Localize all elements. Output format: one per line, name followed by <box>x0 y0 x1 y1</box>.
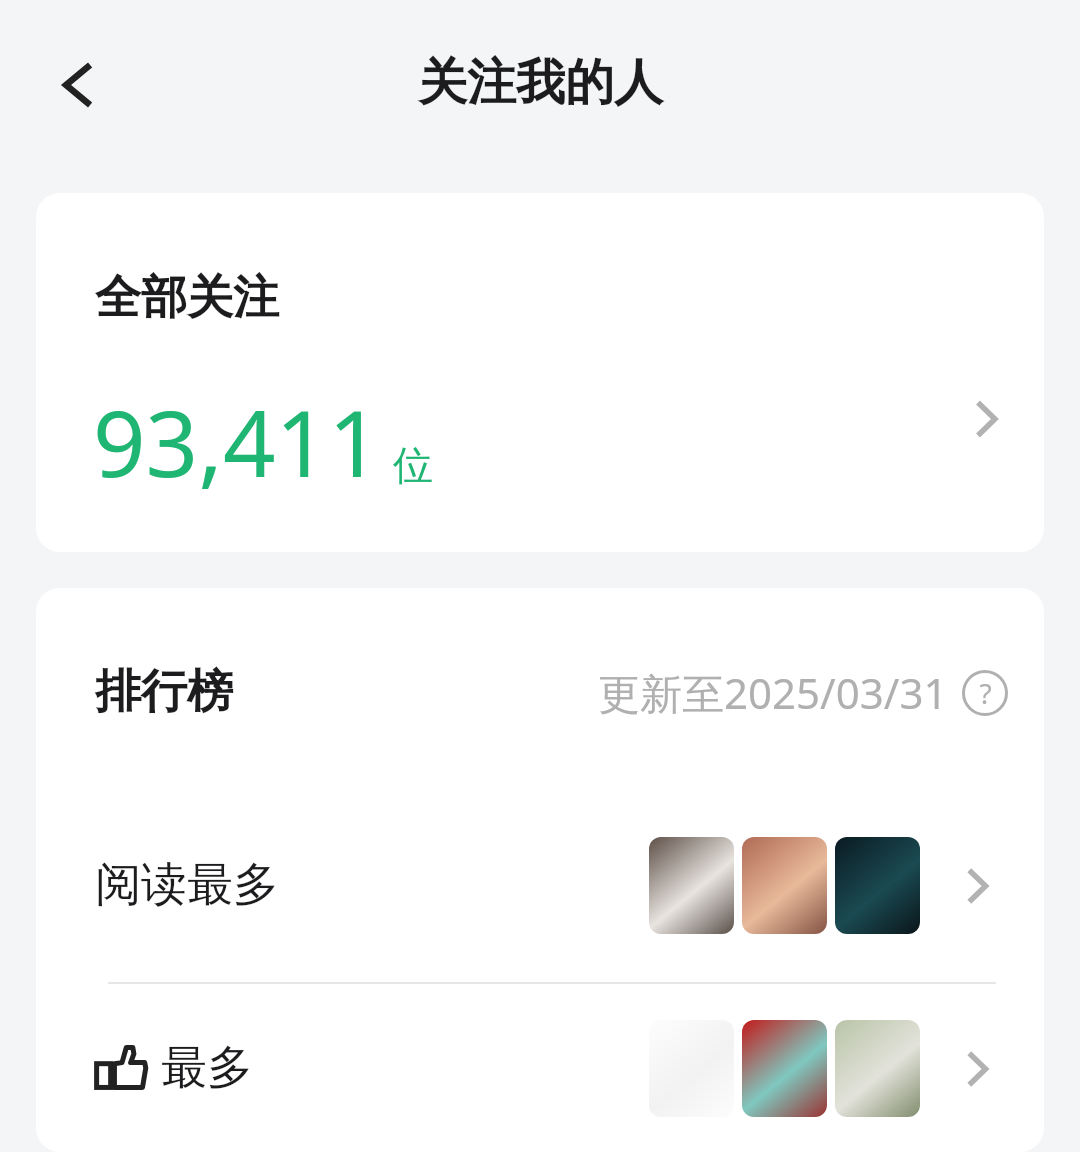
staticText: 关注我的人 <box>418 52 663 114</box>
button[interactable]: 最多 <box>36 984 1044 1152</box>
staticText: 全部关注 <box>95 269 279 327</box>
button[interactable]: 更新至2025/03/31 <box>598 664 1008 721</box>
staticText: 排行榜 <box>95 663 233 721</box>
button[interactable]: Back <box>30 37 126 133</box>
staticText: 阅读最多 <box>95 856 279 914</box>
other: Help <box>962 670 1008 716</box>
staticText: 93,411 <box>93 379 381 504</box>
button[interactable]: 全部关注 <box>36 193 1044 552</box>
staticText: 更新至2025/03/31 <box>598 664 948 721</box>
staticText: 最多 <box>161 1039 253 1097</box>
staticText: 位 <box>393 440 433 490</box>
staticText: ? <box>979 674 992 712</box>
button[interactable]: 阅读最多 <box>36 788 1044 982</box>
